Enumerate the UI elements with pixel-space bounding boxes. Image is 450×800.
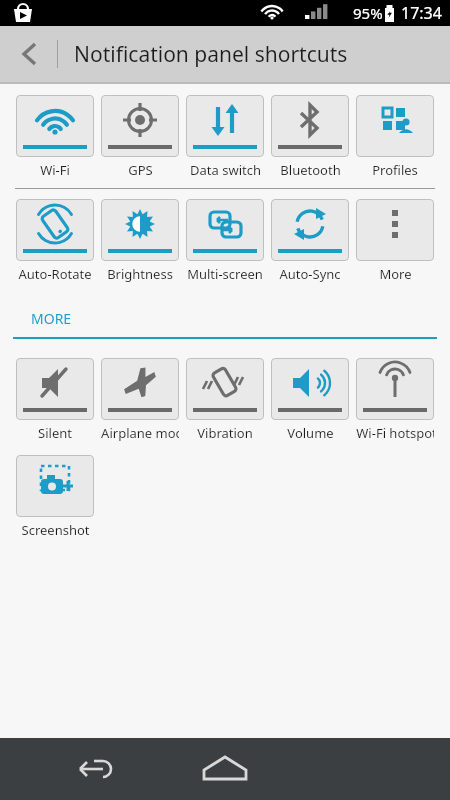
button[interactable]: Data switch [186, 95, 264, 179]
button[interactable]: Home [195, 739, 255, 799]
staticText: Silent [38, 424, 72, 442]
button[interactable]: More [356, 199, 434, 283]
button[interactable]: Back [0, 26, 56, 82]
staticText: Bluetooth [280, 161, 341, 179]
button[interactable]: Screenshot [16, 455, 94, 539]
staticText: Multi-screen [187, 265, 263, 283]
staticText: Auto-Sync [279, 265, 341, 283]
button[interactable]: Auto-Sync [271, 199, 349, 283]
button[interactable]: Profiles [356, 95, 434, 179]
button[interactable]: Volume [271, 358, 349, 442]
staticText: 95% [353, 3, 383, 23]
staticText: Profiles [372, 161, 418, 179]
button[interactable]: Bluetooth [271, 95, 349, 179]
staticText: GPS [128, 161, 153, 179]
staticText: Screenshot [21, 521, 90, 539]
button[interactable]: Brightness [101, 199, 179, 283]
button[interactable]: Wi-Fi [16, 95, 94, 179]
button[interactable]: Auto-Rotate [16, 199, 94, 283]
button[interactable]: GPS [101, 95, 179, 179]
button[interactable]: Silent [16, 358, 94, 442]
button[interactable]: Vibration [186, 358, 264, 442]
staticText: 17:34 [401, 2, 442, 24]
staticText: Wi-Fi hotspot [356, 424, 434, 442]
button[interactable]: Airplane mode [101, 358, 179, 442]
staticText: Auto-Rotate [18, 265, 92, 283]
staticText: MORE [31, 309, 72, 328]
button[interactable]: Wi-Fi hotspot [356, 358, 434, 442]
staticText: Volume [287, 424, 334, 442]
staticText: Wi-Fi [40, 161, 70, 179]
staticText: Brightness [107, 265, 173, 283]
staticText: Notification panel shortcuts [74, 40, 348, 69]
button[interactable]: Multi-screen [186, 199, 264, 283]
staticText: Vibration [197, 424, 253, 442]
button[interactable]: Back [70, 742, 124, 796]
staticText: Airplane mode [101, 424, 179, 442]
staticText: Data switch [190, 161, 261, 179]
staticText: More [379, 265, 412, 283]
